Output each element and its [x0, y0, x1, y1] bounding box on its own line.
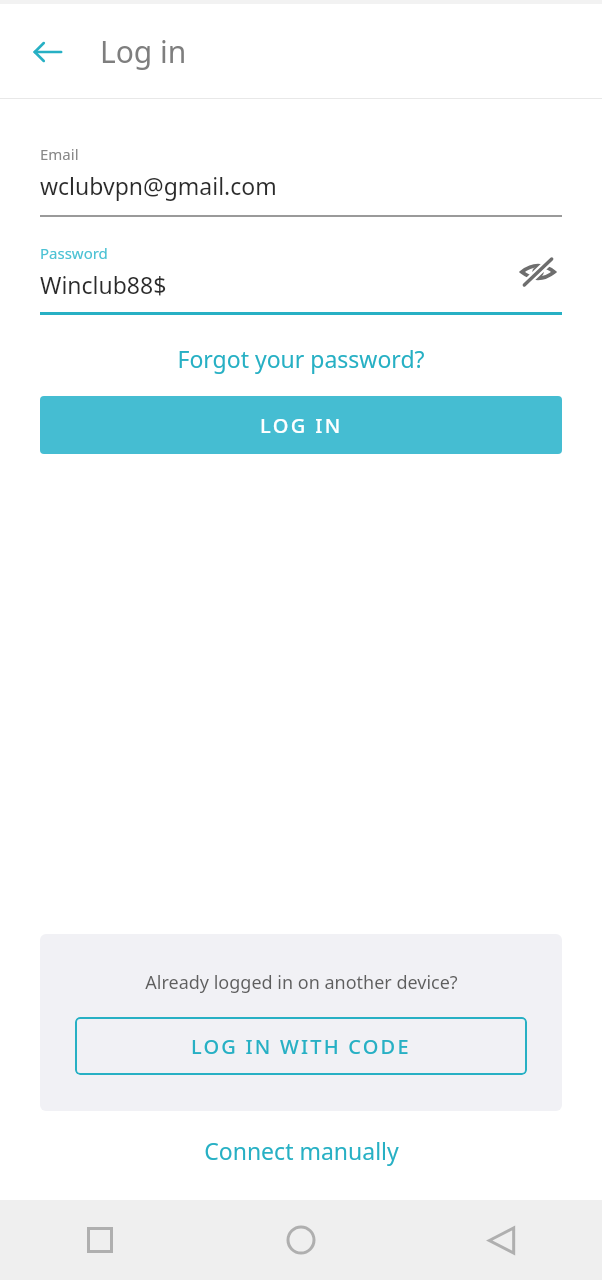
- button[interactable]: Show password: [514, 248, 562, 296]
- staticText: Log in: [100, 31, 187, 72]
- staticText: Email: [40, 144, 79, 164]
- button[interactable]: Forgot your password?: [0, 337, 602, 380]
- button[interactable]: Connect manually: [0, 1129, 602, 1172]
- button[interactable]: Back: [401, 1200, 602, 1280]
- staticText: Connect manually: [204, 1135, 399, 1166]
- staticText: Forgot your password?: [177, 343, 425, 374]
- button[interactable]: Back: [24, 28, 72, 76]
- staticText: wclubvpn@gmail.com: [40, 170, 277, 201]
- staticText: LOG IN: [260, 412, 343, 439]
- button[interactable]: Recents: [0, 1200, 200, 1280]
- staticText: Already logged in on another device?: [145, 970, 458, 995]
- staticText: Winclub88$: [40, 269, 167, 300]
- button[interactable]: LOG IN: [40, 396, 562, 454]
- staticText: LOG IN WITH CODE: [191, 1033, 411, 1060]
- staticText: Password: [40, 243, 108, 263]
- button[interactable]: LOG IN WITH CODE: [75, 1017, 527, 1075]
- button[interactable]: Home: [200, 1200, 401, 1280]
